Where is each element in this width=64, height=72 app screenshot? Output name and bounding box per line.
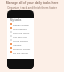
staticText: Call with the client — [13, 35, 32, 38]
button[interactable]: Design review meeting — [8, 22, 33, 26]
staticText: Write release notes — [13, 39, 32, 42]
button[interactable]: Update documentation — [8, 42, 33, 46]
staticText: Send weekly report — [13, 27, 32, 30]
staticText: My tasks — [10, 18, 22, 22]
staticText: Organize, track and finish them faster — [0, 6, 64, 10]
button[interactable]: Refactor parser code — [8, 46, 33, 50]
button[interactable]: Plan the sprint backlog — [8, 30, 33, 34]
staticText: Design review meeting — [13, 23, 32, 26]
staticText: Plan the sprint backlog — [13, 31, 32, 34]
button[interactable]: Write release notes — [8, 38, 33, 42]
staticText: Fix the layout bug — [13, 51, 32, 54]
staticText: Manage all of your daily tasks here — [0, 1, 64, 5]
button[interactable]: Call with the client — [8, 34, 33, 38]
staticText: Refactor parser code — [13, 47, 32, 50]
staticText: Update documentation — [13, 43, 32, 46]
button[interactable]: Send weekly report — [8, 26, 33, 30]
button[interactable]: Fix the layout bug — [8, 50, 33, 54]
